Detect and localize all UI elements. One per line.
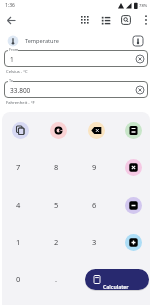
staticText: 6 bbox=[92, 200, 97, 210]
staticText: 2 bbox=[54, 237, 59, 247]
button[interactable] bbox=[4, 81, 148, 98]
button[interactable]: 5 bbox=[47, 196, 65, 214]
button[interactable] bbox=[12, 122, 29, 139]
button[interactable]: 3 bbox=[85, 233, 103, 251]
button[interactable]: 6 bbox=[85, 196, 103, 214]
staticText: 7 bbox=[16, 162, 21, 172]
staticText: 3 bbox=[92, 237, 97, 247]
staticText: 5 bbox=[54, 200, 59, 210]
staticText: 9 bbox=[92, 162, 97, 172]
button[interactable] bbox=[121, 15, 131, 25]
staticText: 1 bbox=[10, 55, 14, 64]
button[interactable] bbox=[125, 197, 142, 214]
button[interactable]: 1 bbox=[9, 233, 27, 251]
button[interactable] bbox=[101, 15, 111, 25]
button[interactable]: 9 bbox=[85, 158, 103, 176]
staticText: 0 bbox=[16, 274, 21, 284]
button[interactable]: 2 bbox=[47, 233, 65, 251]
staticText: 1 bbox=[16, 237, 21, 247]
staticText: Calculater bbox=[103, 283, 129, 290]
button[interactable] bbox=[4, 13, 19, 28]
button[interactable] bbox=[135, 85, 145, 95]
button[interactable]: . bbox=[47, 270, 65, 288]
staticText: 33.800 bbox=[10, 86, 31, 95]
staticText: 1:36 bbox=[5, 2, 15, 9]
button[interactable]: 7 bbox=[9, 158, 27, 176]
button[interactable] bbox=[135, 54, 145, 64]
button[interactable] bbox=[50, 122, 67, 139]
staticText: Celsius - °C bbox=[6, 69, 28, 75]
staticText: Fahrenheit - °F bbox=[6, 100, 35, 106]
button[interactable]: 4 bbox=[9, 196, 27, 214]
button[interactable] bbox=[142, 14, 150, 26]
button[interactable]: Calculater bbox=[85, 269, 149, 290]
staticText: . bbox=[55, 274, 58, 284]
button[interactable] bbox=[132, 35, 144, 47]
staticText: Temperature bbox=[25, 37, 59, 45]
button[interactable] bbox=[4, 50, 148, 67]
button[interactable]: 0 bbox=[9, 270, 27, 288]
staticText: To bbox=[9, 78, 14, 83]
button[interactable]: 8 bbox=[47, 158, 65, 176]
button[interactable] bbox=[80, 15, 90, 25]
staticText: 4 bbox=[16, 200, 21, 210]
staticText: 8 bbox=[54, 162, 59, 172]
button[interactable]: Temperature bbox=[6, 34, 106, 48]
button[interactable] bbox=[88, 122, 105, 139]
button[interactable] bbox=[125, 122, 142, 139]
staticText: 78% bbox=[139, 3, 148, 9]
button[interactable] bbox=[125, 234, 142, 251]
button[interactable] bbox=[125, 159, 142, 176]
staticText: From bbox=[9, 47, 19, 52]
